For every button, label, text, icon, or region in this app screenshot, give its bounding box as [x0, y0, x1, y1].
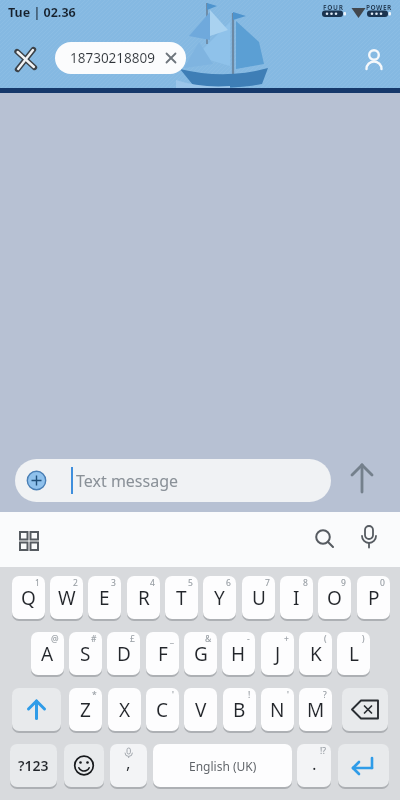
- button[interactable]: [360, 46, 390, 76]
- button[interactable]: *: [69, 688, 102, 731]
- staticText: +: [284, 633, 289, 645]
- staticText: C: [156, 697, 169, 723]
- button[interactable]: +: [261, 632, 294, 675]
- staticText: Z: [80, 697, 91, 723]
- staticText: 5: [188, 577, 193, 589]
- button[interactable]: Text message: [15, 459, 331, 502]
- staticText: B: [233, 697, 246, 723]
- staticText: English (UK): [189, 758, 257, 774]
- staticText: _: [170, 633, 174, 645]
- staticText: W: [58, 585, 76, 611]
- staticText: #: [91, 633, 97, 645]
- staticText: 0: [380, 577, 385, 589]
- button[interactable]: 9: [318, 576, 351, 619]
- button[interactable]: ): [337, 632, 370, 675]
- button[interactable]: 6: [203, 576, 236, 619]
- staticText: N: [270, 697, 285, 723]
- button[interactable]: &: [184, 632, 217, 675]
- button[interactable]: -: [222, 632, 255, 675]
- staticText: O: [327, 585, 342, 611]
- button[interactable]: 18730218809: [55, 42, 186, 74]
- staticText: Y: [214, 585, 225, 611]
- button[interactable]: 4: [127, 576, 160, 619]
- button[interactable]: 3: [88, 576, 121, 619]
- button[interactable]: 2: [50, 576, 83, 619]
- button[interactable]: !: [223, 688, 256, 731]
- button[interactable]: ': [261, 688, 294, 731]
- staticText: &: [205, 633, 212, 645]
- button[interactable]: [64, 744, 104, 787]
- staticText: 9: [341, 577, 346, 589]
- button[interactable]: [8, 42, 44, 78]
- staticText: Text message: [76, 470, 179, 492]
- button[interactable]: £: [107, 632, 140, 675]
- staticText: 8: [303, 577, 308, 589]
- staticText: ': [287, 689, 289, 701]
- staticText: R: [138, 585, 150, 611]
- button[interactable]: ?123: [10, 744, 57, 787]
- staticText: 6: [226, 577, 231, 589]
- button[interactable]: [342, 688, 388, 731]
- button[interactable]: ?: [299, 688, 332, 731]
- staticText: I: [293, 585, 300, 611]
- button[interactable]: #: [69, 632, 102, 675]
- staticText: FOUR: [323, 3, 344, 12]
- staticText: Q: [21, 585, 36, 611]
- staticText: A: [41, 641, 54, 667]
- button[interactable]: 7: [242, 576, 275, 619]
- button[interactable]: 0: [357, 576, 390, 619]
- button[interactable]: [12, 688, 61, 731]
- button[interactable]: V: [184, 688, 217, 731]
- staticText: ?: [323, 689, 327, 701]
- staticText: Tue | 02.36: [8, 4, 76, 21]
- staticText: -: [247, 633, 250, 645]
- staticText: POWER: [366, 3, 392, 12]
- staticText: F: [158, 641, 168, 667]
- staticText: V: [195, 697, 207, 723]
- staticText: *: [92, 689, 97, 701]
- button[interactable]: [308, 523, 340, 555]
- staticText: 4: [150, 577, 155, 589]
- staticText: G: [194, 641, 208, 667]
- staticText: 3: [111, 577, 116, 589]
- staticText: J: [275, 641, 281, 667]
- staticText: S: [80, 641, 91, 667]
- staticText: H: [231, 641, 246, 667]
- button[interactable]: 8: [280, 576, 313, 619]
- staticText: !: [248, 689, 251, 701]
- staticText: 1: [35, 577, 40, 589]
- staticText: D: [117, 641, 131, 667]
- button[interactable]: ': [146, 688, 179, 731]
- staticText: M: [307, 697, 325, 723]
- staticText: @: [51, 633, 59, 645]
- staticText: !?: [320, 745, 326, 757]
- staticText: £: [130, 633, 135, 645]
- button[interactable]: !?: [297, 744, 331, 787]
- staticText: X: [119, 697, 131, 723]
- staticText: (: [324, 633, 327, 645]
- staticText: ,: [126, 751, 131, 774]
- staticText: ): [362, 633, 365, 645]
- button[interactable]: [353, 523, 385, 555]
- staticText: 18730218809: [70, 49, 155, 67]
- staticText: .: [312, 752, 317, 775]
- staticText: ?123: [18, 756, 49, 775]
- button[interactable]: [338, 744, 389, 787]
- button[interactable]: X: [108, 688, 141, 731]
- staticText: E: [99, 585, 110, 611]
- staticText: K: [310, 641, 322, 667]
- staticText: P: [368, 585, 380, 611]
- button[interactable]: [346, 460, 378, 496]
- staticText: ': [172, 689, 174, 701]
- button[interactable]: [13, 525, 45, 557]
- button[interactable]: _: [146, 632, 179, 675]
- staticText: U: [252, 585, 266, 611]
- button[interactable]: 5: [165, 576, 198, 619]
- staticText: 2: [73, 577, 78, 589]
- staticText: T: [176, 585, 187, 611]
- button[interactable]: @: [31, 632, 64, 675]
- button[interactable]: 1: [12, 576, 45, 619]
- button[interactable]: ,: [110, 744, 147, 787]
- button[interactable]: (: [299, 632, 332, 675]
- button[interactable]: English (UK): [153, 744, 292, 787]
